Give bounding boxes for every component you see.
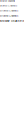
staticText: Browse Channels — [0, 9, 18, 12]
staticText: Browse Channels — [0, 0, 15, 2]
staticText: Browse Channels — [0, 14, 18, 17]
staticText: Browse Channels — [0, 19, 24, 23]
staticText: Browse Channels — [0, 4, 17, 7]
